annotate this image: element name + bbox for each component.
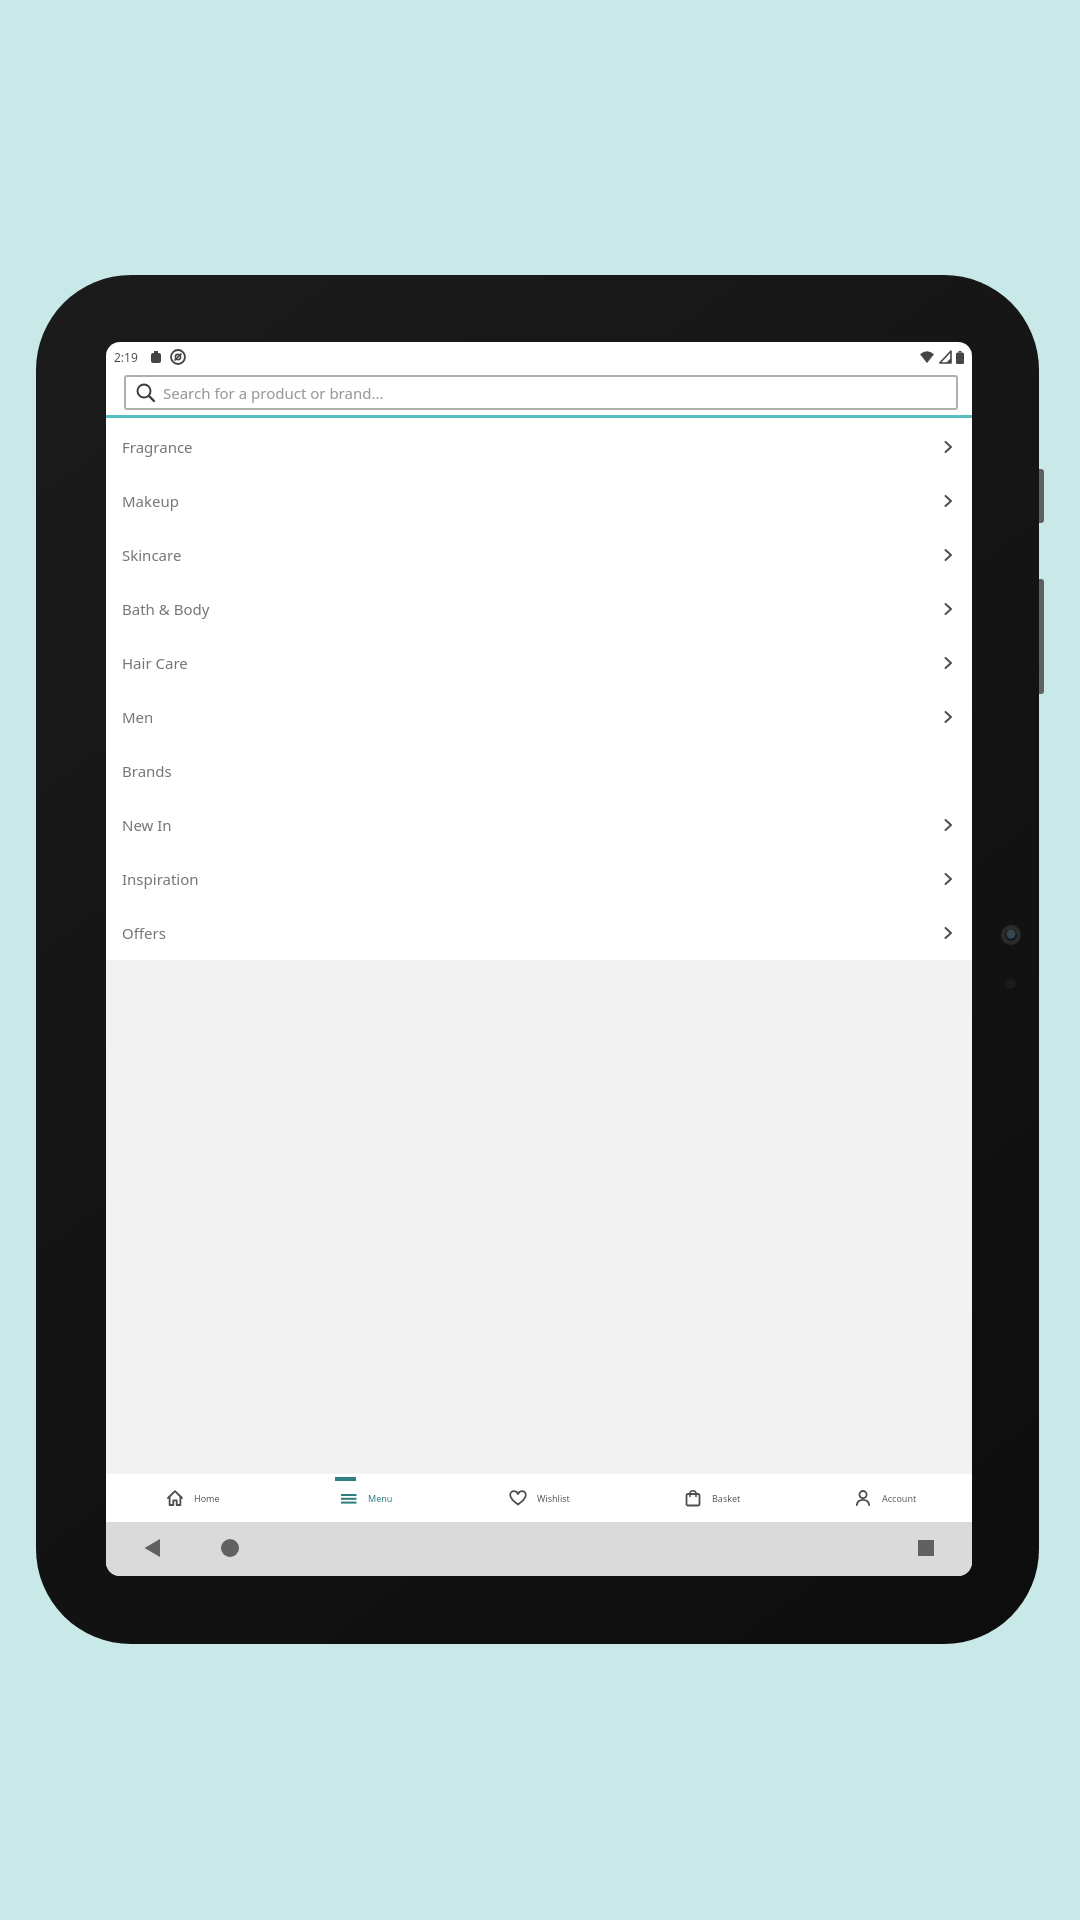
button[interactable]: Home <box>106 1474 280 1522</box>
button[interactable]: Basket <box>626 1474 799 1522</box>
staticText: New In <box>122 815 172 835</box>
button[interactable]: Fragrance <box>122 420 952 474</box>
staticText: Fragrance <box>122 437 193 457</box>
staticText: 2:19 <box>114 349 138 365</box>
staticText: Search for a product or brand... <box>163 383 384 403</box>
button[interactable]: New In <box>122 798 952 852</box>
staticText: Home <box>194 1492 220 1504</box>
button[interactable]: Inspiration <box>122 852 952 906</box>
button[interactable]: Bath & Body <box>122 582 952 636</box>
staticText: Menu <box>368 1492 393 1504</box>
staticText: Hair Care <box>122 653 188 673</box>
staticText: Bath & Body <box>122 599 210 619</box>
staticText: Account <box>882 1492 917 1504</box>
staticText: Skincare <box>122 545 182 565</box>
button[interactable]: Brands <box>122 744 952 798</box>
button[interactable]: Account <box>799 1474 972 1522</box>
button[interactable]: Hair Care <box>122 636 952 690</box>
staticText: Men <box>122 707 154 727</box>
staticText: Offers <box>122 923 166 943</box>
staticText: Brands <box>122 761 172 781</box>
button[interactable]: Search for a product or brand... <box>124 375 958 410</box>
staticText: Makeup <box>122 491 179 511</box>
button[interactable]: Makeup <box>122 474 952 528</box>
button[interactable]: Men <box>122 690 952 744</box>
button[interactable]: Wishlist <box>453 1474 626 1522</box>
button[interactable]: Offers <box>122 906 952 960</box>
button[interactable]: Skincare <box>122 528 952 582</box>
staticText: Inspiration <box>122 869 199 889</box>
button[interactable]: Menu <box>280 1474 453 1522</box>
staticText: Wishlist <box>537 1492 570 1504</box>
staticText: Basket <box>712 1492 741 1504</box>
